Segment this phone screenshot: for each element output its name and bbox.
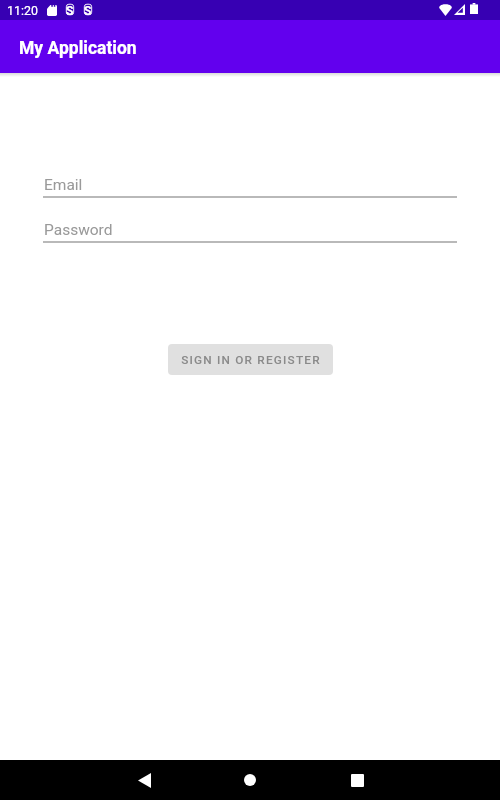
button[interactable]: Home — [226, 760, 274, 800]
staticText: 11:20 — [7, 3, 38, 18]
button[interactable]: Password — [43, 217, 457, 243]
staticText: Email — [44, 176, 83, 194]
staticText: My Application — [19, 38, 137, 59]
staticText: Password — [44, 221, 113, 239]
staticText: S — [84, 4, 92, 15]
button[interactable]: Email — [43, 172, 457, 198]
button[interactable]: Back — [120, 760, 168, 800]
staticText: SIGN IN OR REGISTER — [181, 353, 321, 367]
button[interactable]: Recent apps — [333, 760, 381, 800]
button[interactable]: SIGN IN OR REGISTER — [168, 344, 333, 375]
staticText: S — [66, 4, 74, 15]
